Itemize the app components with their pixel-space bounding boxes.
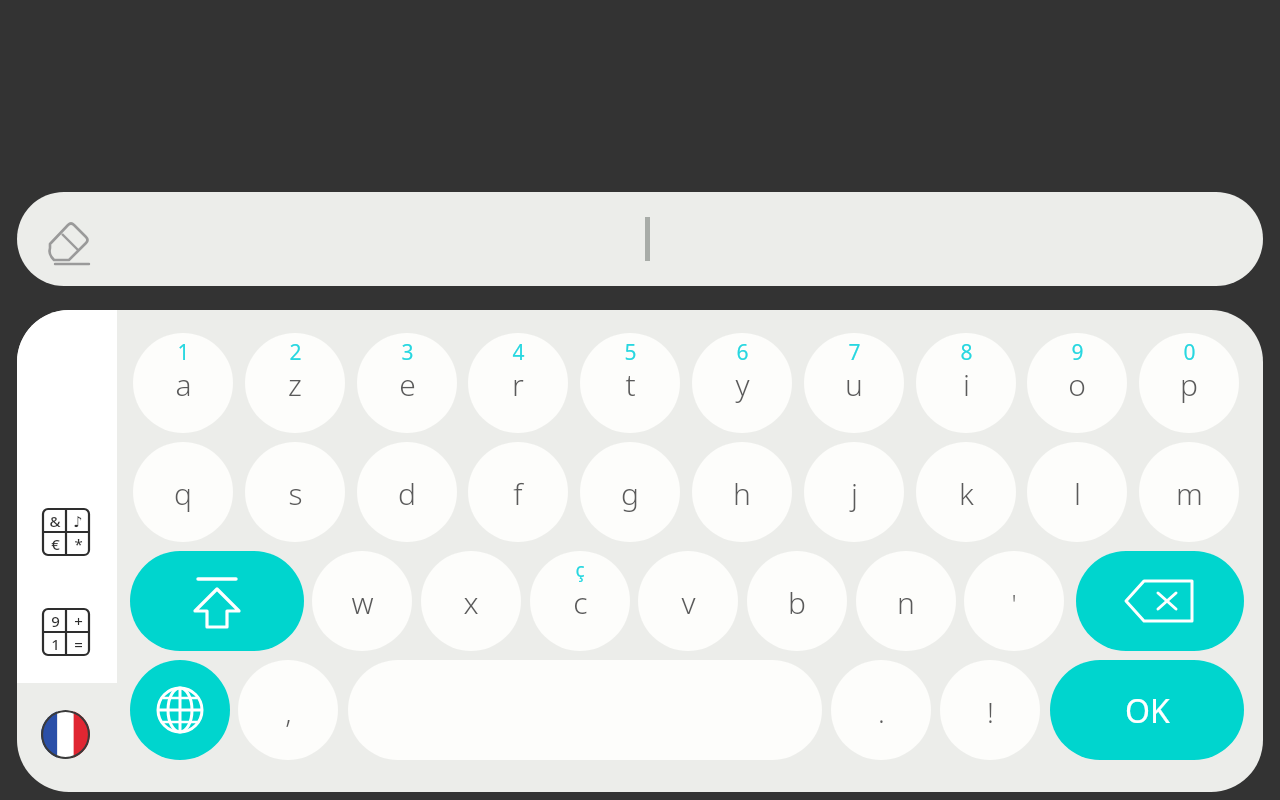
staticText: f: [513, 473, 523, 514]
button[interactable]: Change language: [130, 660, 230, 760]
button[interactable]: [421, 551, 521, 651]
button[interactable]: [133, 333, 233, 433]
button[interactable]: Shift: [130, 551, 304, 651]
button[interactable]: [1139, 333, 1239, 433]
staticText: v: [681, 582, 696, 623]
staticText: 8: [960, 338, 973, 367]
staticText: x: [463, 582, 479, 623]
staticText: 6: [736, 338, 749, 367]
button[interactable]: [357, 442, 457, 542]
staticText: =: [74, 634, 83, 654]
staticText: 4: [512, 338, 525, 367]
button[interactable]: [312, 551, 412, 651]
button[interactable]: [856, 551, 956, 651]
staticText: ,: [285, 693, 292, 731]
staticText: j: [851, 473, 858, 514]
button[interactable]: [468, 333, 568, 433]
button[interactable]: [580, 333, 680, 433]
staticText: 9: [51, 611, 60, 631]
staticText: b: [788, 582, 806, 623]
staticText: y: [735, 364, 750, 405]
button[interactable]: Numbers: [42, 608, 90, 656]
button[interactable]: [638, 551, 738, 651]
staticText: 1: [177, 338, 190, 367]
button[interactable]: [964, 551, 1064, 651]
button[interactable]: [245, 442, 345, 542]
staticText: 3: [401, 338, 414, 367]
staticText: ♪: [73, 513, 83, 530]
staticText: k: [959, 473, 974, 514]
staticText: r: [512, 364, 524, 405]
button[interactable]: [1027, 333, 1127, 433]
staticText: 9: [1071, 338, 1084, 367]
button[interactable]: [916, 333, 1016, 433]
button[interactable]: [1139, 442, 1239, 542]
button[interactable]: [245, 333, 345, 433]
staticText: 1: [51, 634, 60, 654]
button[interactable]: [238, 660, 338, 760]
staticText: o: [1068, 364, 1086, 405]
staticText: c: [573, 582, 588, 623]
button[interactable]: [804, 333, 904, 433]
button[interactable]: [1027, 442, 1127, 542]
staticText: n: [897, 582, 915, 623]
staticText: e: [399, 364, 416, 405]
staticText: u: [845, 364, 863, 405]
staticText: 2: [289, 338, 302, 367]
button[interactable]: [17, 192, 1263, 286]
button[interactable]: [692, 333, 792, 433]
staticText: !: [987, 693, 994, 731]
staticText: 0: [1183, 338, 1196, 367]
staticText: &: [49, 511, 61, 531]
staticText: a: [175, 364, 192, 405]
button[interactable]: [831, 660, 931, 760]
staticText: 7: [848, 338, 861, 367]
staticText: i: [963, 364, 970, 405]
staticText: +: [74, 611, 83, 631]
button[interactable]: [530, 551, 630, 651]
staticText: g: [621, 473, 639, 514]
button[interactable]: Backspace: [1076, 551, 1244, 651]
staticText: €: [51, 534, 60, 554]
button[interactable]: [133, 442, 233, 542]
staticText: s: [288, 473, 303, 514]
button[interactable]: [916, 442, 1016, 542]
button[interactable]: [468, 442, 568, 542]
button[interactable]: [692, 442, 792, 542]
staticText: .: [878, 693, 885, 731]
button[interactable]: [357, 333, 457, 433]
staticText: t: [625, 364, 636, 405]
staticText: h: [733, 473, 751, 514]
staticText: z: [288, 364, 302, 405]
button[interactable]: Symbols: [42, 508, 90, 556]
button[interactable]: Space: [348, 660, 822, 760]
button[interactable]: [804, 442, 904, 542]
button[interactable]: [940, 660, 1040, 760]
button[interactable]: Clear text: [42, 214, 94, 266]
staticText: p: [1180, 364, 1198, 405]
button[interactable]: [580, 442, 680, 542]
staticText: l: [1074, 473, 1081, 514]
staticText: w: [351, 582, 374, 623]
button[interactable]: [747, 551, 847, 651]
staticText: m: [1176, 473, 1203, 514]
staticText: ç: [575, 557, 585, 583]
staticText: 5: [624, 338, 637, 367]
staticText: ': [1011, 585, 1017, 620]
button[interactable]: Language: French: [41, 710, 90, 759]
staticText: *: [74, 534, 83, 554]
staticText: d: [398, 473, 416, 514]
staticText: q: [174, 473, 192, 514]
staticText: OK: [1125, 689, 1170, 733]
button[interactable]: OK: [1050, 660, 1244, 760]
